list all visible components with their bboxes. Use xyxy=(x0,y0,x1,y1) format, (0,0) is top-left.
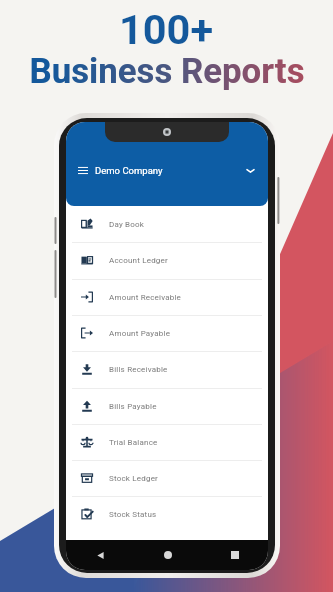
staticText: Amount Payable xyxy=(109,329,171,338)
staticText: Bills Receivable xyxy=(109,365,168,374)
button[interactable]: Bills Payable xyxy=(66,388,268,424)
staticText: Day Book xyxy=(109,220,145,229)
button[interactable]: Stock Status xyxy=(66,496,268,532)
button[interactable]: Trial Balance xyxy=(66,424,268,460)
staticText: Trial Balance xyxy=(109,438,158,447)
button[interactable]: Amount Receivable xyxy=(66,279,268,315)
staticText: Stock Status xyxy=(109,510,157,519)
staticText: Business Reports xyxy=(29,51,305,92)
button[interactable]: Recent apps xyxy=(201,540,268,570)
button[interactable]: Bills Receivable xyxy=(66,351,268,387)
staticText: 100+ xyxy=(119,5,214,54)
button[interactable]: Open navigation menu xyxy=(78,166,88,175)
button[interactable]: Home xyxy=(134,540,201,570)
staticText: Demo Company xyxy=(95,165,163,176)
staticText: Bills Payable xyxy=(109,402,157,411)
staticText: Amount Receivable xyxy=(109,293,182,302)
staticText: Stock Ledger xyxy=(109,474,158,483)
button[interactable]: Account Ledger xyxy=(66,242,268,278)
button[interactable]: Day Book xyxy=(66,206,268,242)
button[interactable]: Expand company list xyxy=(245,165,256,176)
button[interactable]: Stock Ledger xyxy=(66,460,268,496)
staticText: Account Ledger xyxy=(109,256,168,265)
button[interactable]: Amount Payable xyxy=(66,315,268,351)
button[interactable]: Back xyxy=(66,540,134,570)
